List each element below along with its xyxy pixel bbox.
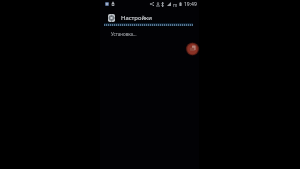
staticText: m xyxy=(173,2,178,8)
staticText: Установка… xyxy=(111,31,137,37)
button[interactable]: Settings xyxy=(108,14,115,22)
staticText: 19:49 xyxy=(184,1,197,8)
button[interactable] xyxy=(104,12,195,24)
staticText: Настройки xyxy=(121,14,152,22)
button[interactable]: Application icon xyxy=(186,43,199,55)
